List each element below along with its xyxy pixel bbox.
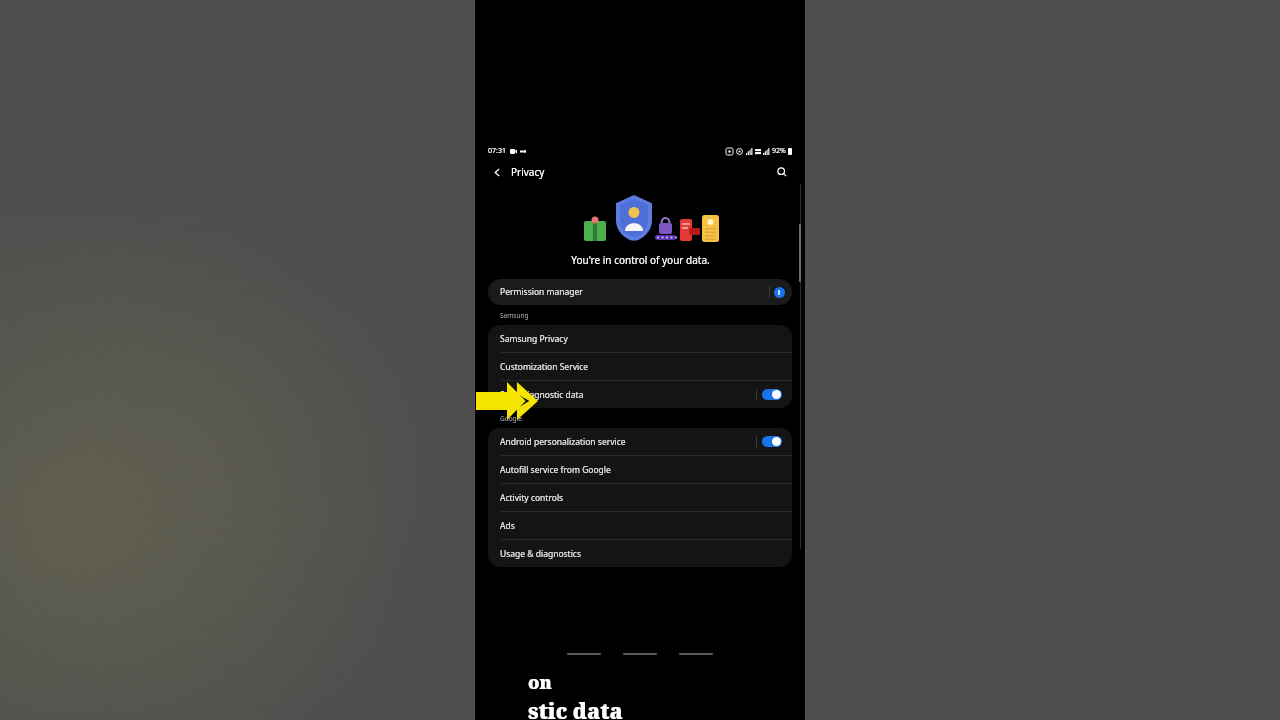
staticText: Privacy [511,165,545,179]
staticText: Autofill service from Google [500,464,782,476]
staticText: 07:31 [488,146,506,156]
staticText: You're in control of your data. [571,253,710,267]
button[interactable]: Toggle Android personalization service [762,436,782,447]
staticText: Ads [500,520,782,532]
staticText: Google [500,414,522,423]
button[interactable]: Back [679,653,713,655]
staticText: stic data [528,697,623,720]
staticText: Send diagnostic data [500,389,756,401]
button[interactable]: Android personalization service [488,428,792,455]
staticText: 92% [772,146,786,156]
staticText: Activity controls [500,492,782,504]
staticText: on [528,670,552,695]
staticText: Android personalization service [500,436,756,448]
button[interactable]: Recents [567,653,601,655]
button[interactable]: Permission manager [488,279,792,305]
button[interactable]: Info [774,287,785,298]
button[interactable]: Usage & diagnostics [488,540,792,567]
staticText: i [778,288,781,298]
staticText: Permission manager [500,286,583,298]
button[interactable]: Home [623,653,657,655]
button[interactable]: Samsung Privacy [488,325,792,352]
button[interactable]: Back [488,163,506,181]
button[interactable]: Search [772,162,792,182]
staticText: Usage & diagnostics [500,548,782,560]
button[interactable]: Activity controls [488,484,792,511]
button[interactable]: Autofill service from Google [488,456,792,483]
staticText: Customization Service [500,361,782,373]
button[interactable]: Customization Service [488,353,792,380]
staticText: Samsung [500,311,529,320]
button[interactable]: Toggle Send diagnostic data [762,389,782,400]
staticText: Samsung Privacy [500,333,782,345]
button[interactable]: Ads [488,512,792,539]
button[interactable]: Send diagnostic data [488,381,792,408]
